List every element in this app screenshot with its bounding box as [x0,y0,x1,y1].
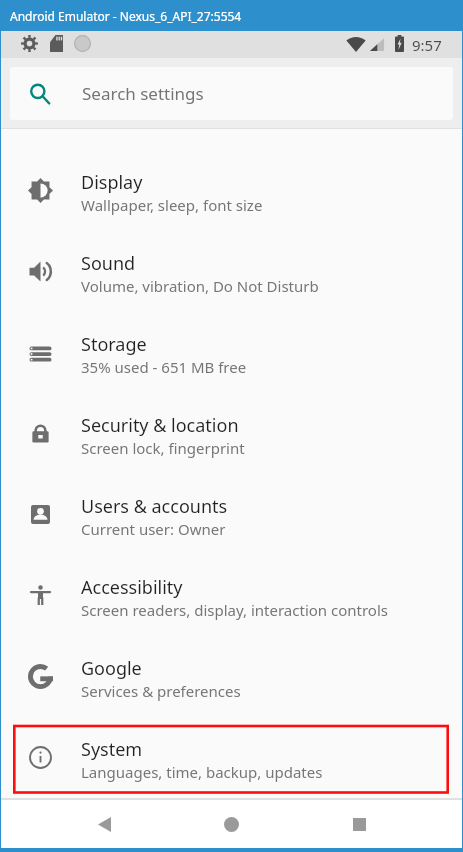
button[interactable]: Back [77,800,131,848]
staticText: Security & location [81,413,239,438]
staticText: Accessibility [81,575,183,600]
staticText: Google [81,656,142,681]
button[interactable]: Recent apps [332,800,386,848]
staticText: Languages, time, backup, updates [81,762,323,782]
staticText: Users & accounts [81,494,228,519]
staticText: Display [81,170,143,195]
staticText: Current user: Owner [81,519,226,539]
button[interactable]: System [0,717,463,798]
button[interactable]: Accessibility [0,555,463,636]
staticText: Wallpaper, sleep, font size [81,195,263,215]
staticText: Android Emulator - Nexus_6_API_27:5554 [10,8,242,24]
staticText: Screen lock, fingerprint [81,438,245,458]
button[interactable]: Home [204,800,258,848]
button[interactable]: Sound [0,231,463,312]
staticText: 35% used - 651 MB free [81,357,247,377]
staticText: Sound [81,251,136,276]
button[interactable]: Google [0,636,463,717]
staticText: Screen readers, display, interaction con… [81,600,388,620]
staticText: Storage [81,332,147,357]
button[interactable]: Security & location [0,393,463,474]
button[interactable]: Storage [0,312,463,393]
staticText: Volume, vibration, Do Not Disturb [81,276,319,296]
staticText: Search settings [82,82,204,105]
staticText: Services & preferences [81,681,241,701]
staticText: 9:57 [412,35,442,55]
button[interactable]: Display [0,150,463,231]
staticText: System [81,737,143,762]
button[interactable]: Search settings [10,67,453,120]
button[interactable]: Users & accounts [0,474,463,555]
